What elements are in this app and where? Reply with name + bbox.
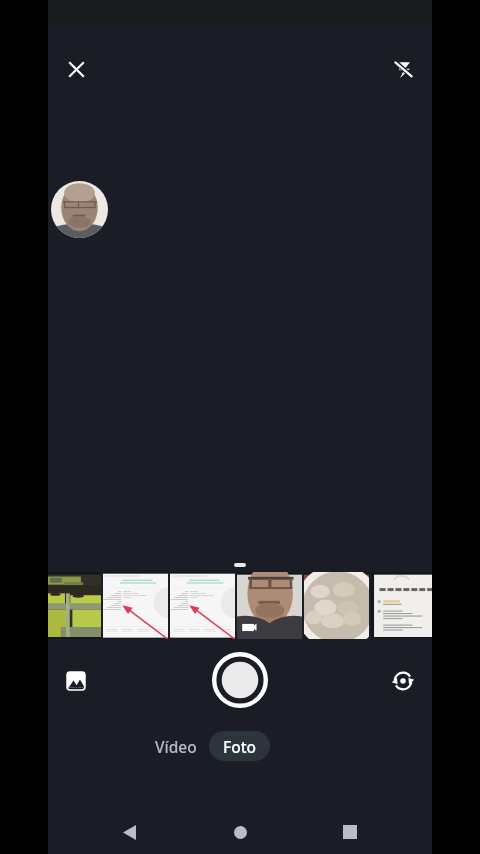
- button[interactable]: Gallery: [54, 659, 98, 703]
- staticText: Vídeo: [155, 736, 197, 757]
- button[interactable]: Recent photo: [170, 572, 235, 639]
- button[interactable]: Recent photo: [237, 572, 302, 639]
- button[interactable]: Profile: [51, 181, 108, 238]
- button[interactable]: Home: [218, 810, 262, 854]
- button[interactable]: Recent photo: [304, 572, 369, 639]
- button[interactable]: Vídeo: [145, 731, 206, 761]
- button[interactable]: Flash off: [385, 51, 421, 87]
- button[interactable]: Recent photo: [103, 572, 168, 639]
- button[interactable]: Take photo: [212, 652, 268, 708]
- button[interactable]: Switch camera: [381, 659, 425, 703]
- button[interactable]: Recent apps: [328, 810, 372, 854]
- button[interactable]: Recent photo: [48, 572, 101, 639]
- button[interactable]: Back: [107, 810, 151, 854]
- staticText: Foto: [223, 736, 257, 757]
- button[interactable]: Recent photo: [371, 572, 432, 639]
- button[interactable]: Foto: [209, 731, 270, 761]
- button[interactable]: Close: [58, 51, 94, 87]
